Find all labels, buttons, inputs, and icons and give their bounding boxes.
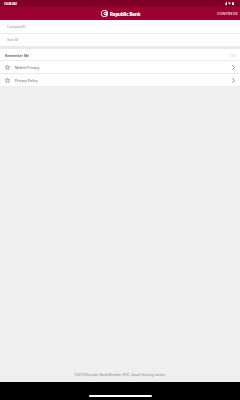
staticText: Privacy Policy <box>15 78 38 83</box>
button[interactable]: Privacy Policy <box>0 74 240 86</box>
staticText: Remember Me <box>5 53 29 57</box>
staticText: ©2019 Republic Bank Member FDIC. Equal H… <box>0 372 240 376</box>
staticText: CONTINUE <box>217 11 238 16</box>
staticText: 10:48 AM <box>4 2 17 6</box>
other: Open <box>232 65 235 70</box>
button[interactable]: Company ID <box>0 20 240 33</box>
other: Open <box>232 78 235 83</box>
button[interactable]: User ID <box>0 34 240 46</box>
staticText: Mobile Privacy <box>15 65 40 70</box>
button[interactable]: Mobile Privacy <box>0 61 240 73</box>
button[interactable]: CONTINUE <box>211 7 240 20</box>
staticText: Republic Bank <box>110 11 141 17</box>
staticText: User ID <box>7 38 19 42</box>
other: Remember Me toggle <box>225 52 236 58</box>
button[interactable]: Remember Me <box>0 49 240 60</box>
staticText: Company ID <box>7 25 26 29</box>
